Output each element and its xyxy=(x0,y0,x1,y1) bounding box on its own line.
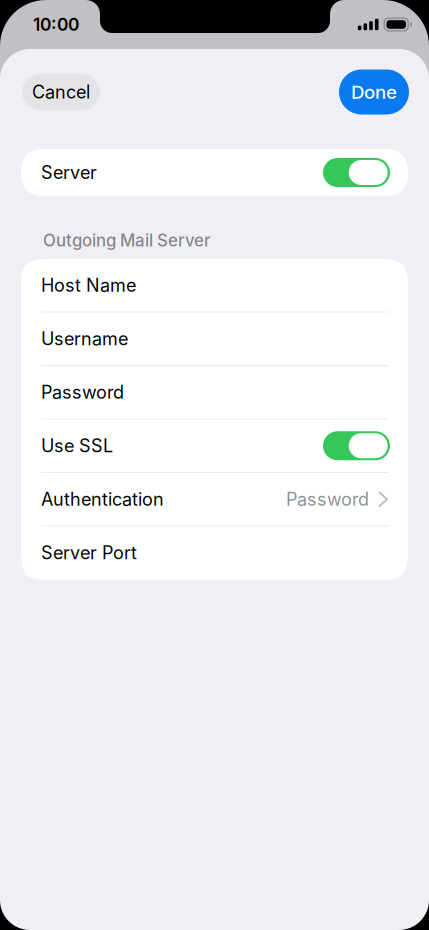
staticText: 10:00 xyxy=(33,14,79,35)
button[interactable]: Authentication xyxy=(21,473,408,526)
staticText: Outgoing Mail Server xyxy=(43,230,210,251)
staticText: Use SSL xyxy=(41,435,113,457)
staticText: Server xyxy=(41,162,97,183)
button[interactable]: Host Name xyxy=(21,259,408,312)
staticText: Password xyxy=(41,381,124,403)
staticText: Done xyxy=(351,81,397,103)
button[interactable]: Use SSL xyxy=(21,419,408,473)
button[interactable]: Username xyxy=(21,312,408,366)
button[interactable]: Password xyxy=(21,366,408,419)
button[interactable]: Server Port xyxy=(21,526,408,580)
button[interactable]: Done xyxy=(339,69,409,114)
staticText: Cancel xyxy=(32,81,90,103)
staticText: Password xyxy=(286,488,369,510)
staticText: Authentication xyxy=(41,488,164,510)
staticText: Host Name xyxy=(41,274,136,296)
button[interactable]: Server xyxy=(21,149,408,196)
button[interactable]: Cancel xyxy=(22,74,100,110)
staticText: Server Port xyxy=(41,542,137,564)
staticText: Username xyxy=(41,328,128,350)
